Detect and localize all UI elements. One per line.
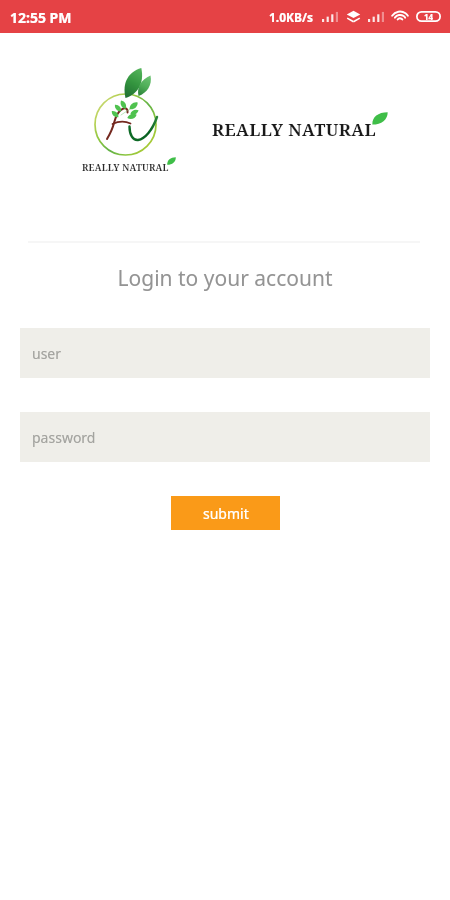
button[interactable]: password — [20, 412, 430, 462]
staticText: REALLY NATURAL — [212, 118, 377, 141]
staticText: Login to your account — [0, 264, 450, 293]
button[interactable]: user — [20, 328, 430, 378]
button[interactable]: Really Natural logo — [90, 58, 165, 150]
button[interactable]: submit — [171, 496, 280, 530]
staticText: submit — [203, 504, 249, 523]
staticText: 1.0KB/s — [269, 9, 314, 25]
staticText: REALLY NATURAL — [82, 161, 169, 173]
staticText: 12:55 PM — [10, 8, 72, 27]
staticText: user — [32, 344, 62, 363]
staticText: 14 — [424, 11, 434, 22]
staticText: password — [32, 428, 96, 447]
